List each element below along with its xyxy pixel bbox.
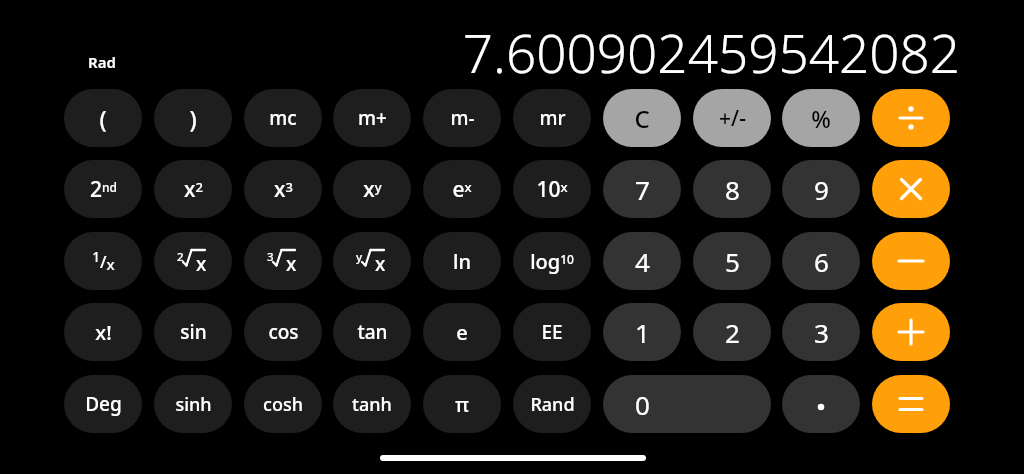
- staticText: Rad: [88, 52, 116, 72]
- button[interactable]: mr: [513, 89, 591, 147]
- staticText: C: [634, 102, 650, 135]
- button[interactable]: x2: [154, 160, 232, 218]
- staticText: m-: [450, 105, 475, 131]
- staticText: 7: [635, 172, 650, 207]
- button[interactable]: mc: [244, 89, 322, 147]
- button[interactable]: EE: [513, 303, 591, 361]
- button[interactable]: 2nd: [64, 160, 142, 218]
- button[interactable]: m-: [423, 89, 501, 147]
- button[interactable]: tanh: [333, 375, 411, 433]
- staticText: 2: [177, 249, 184, 265]
- button[interactable]: %: [782, 89, 860, 147]
- staticText: x2: [184, 175, 203, 204]
- staticText: cosh: [263, 392, 303, 417]
- button[interactable]: ex: [423, 160, 501, 218]
- staticText: 4: [635, 244, 650, 279]
- staticText: xy: [363, 175, 382, 204]
- staticText: %: [811, 103, 831, 134]
- button[interactable]: Rand: [513, 375, 591, 433]
- staticText: x: [375, 251, 386, 277]
- staticText: mr: [539, 105, 566, 131]
- button[interactable]: ): [154, 89, 232, 147]
- button[interactable]: cos: [244, 303, 322, 361]
- button[interactable]: log10: [513, 232, 591, 290]
- staticText: ): [189, 103, 197, 134]
- button[interactable]: Plus: [872, 303, 950, 361]
- button[interactable]: e: [423, 303, 501, 361]
- button[interactable]: 1/x: [64, 232, 142, 290]
- staticText: ln: [453, 248, 471, 275]
- staticText: x3: [274, 175, 293, 204]
- button[interactable]: 6: [782, 232, 860, 290]
- staticText: 5: [725, 244, 740, 279]
- staticText: π: [455, 391, 469, 418]
- button[interactable]: 1: [603, 303, 681, 361]
- button[interactable]: (: [64, 89, 142, 147]
- staticText: 1: [635, 315, 650, 350]
- button[interactable]: 3: [782, 303, 860, 361]
- button[interactable]: Y-th root: [333, 232, 411, 290]
- button[interactable]: tan: [333, 303, 411, 361]
- staticText: Rand: [530, 392, 575, 417]
- button[interactable]: 8: [693, 160, 771, 218]
- button[interactable]: 5: [693, 232, 771, 290]
- staticText: x: [196, 251, 207, 277]
- staticText: 9: [814, 172, 829, 207]
- button[interactable]: ln: [423, 232, 501, 290]
- button[interactable]: x!: [64, 303, 142, 361]
- staticText: 1/x: [92, 248, 115, 274]
- button[interactable]: +/-: [693, 89, 771, 147]
- staticText: log10: [530, 248, 574, 275]
- button[interactable]: π: [423, 375, 501, 433]
- staticText: 3: [814, 315, 829, 350]
- staticText: 8: [725, 172, 740, 207]
- button[interactable]: Divide: [872, 89, 950, 147]
- staticText: x!: [95, 319, 112, 346]
- staticText: 7.600902459542082: [462, 16, 960, 78]
- staticText: y: [356, 249, 363, 265]
- button[interactable]: Cube root: [244, 232, 322, 290]
- staticText: Deg: [85, 391, 122, 417]
- button[interactable]: 2: [693, 303, 771, 361]
- button[interactable]: 9: [782, 160, 860, 218]
- button[interactable]: Decimal point: [782, 375, 860, 433]
- staticText: ex: [452, 175, 472, 204]
- staticText: sinh: [175, 392, 212, 417]
- button[interactable]: 0: [603, 375, 771, 433]
- staticText: 10x: [536, 175, 568, 204]
- staticText: 0: [635, 387, 650, 422]
- staticText: +/-: [719, 104, 746, 133]
- staticText: (: [99, 103, 107, 134]
- staticText: tan: [357, 319, 388, 345]
- button[interactable]: Deg: [64, 375, 142, 433]
- button[interactable]: m+: [333, 89, 411, 147]
- button[interactable]: 10x: [513, 160, 591, 218]
- staticText: cos: [268, 319, 299, 345]
- button[interactable]: x3: [244, 160, 322, 218]
- staticText: x: [286, 251, 297, 277]
- button[interactable]: cosh: [244, 375, 322, 433]
- staticText: 3: [267, 249, 274, 265]
- button[interactable]: 4: [603, 232, 681, 290]
- staticText: EE: [541, 319, 563, 345]
- button[interactable]: Rad: [84, 50, 120, 74]
- button[interactable]: sinh: [154, 375, 232, 433]
- staticText: 2: [725, 315, 740, 350]
- button[interactable]: Multiply: [872, 160, 950, 218]
- staticText: m+: [358, 105, 387, 131]
- staticText: 6: [814, 244, 829, 279]
- button[interactable]: Square root: [154, 232, 232, 290]
- staticText: 2nd: [90, 175, 117, 204]
- button[interactable]: Equals: [872, 375, 950, 433]
- button[interactable]: sin: [154, 303, 232, 361]
- staticText: sin: [180, 319, 207, 345]
- staticText: e: [456, 319, 468, 346]
- button[interactable]: C: [603, 89, 681, 147]
- staticText: mc: [269, 105, 297, 131]
- button[interactable]: 7: [603, 160, 681, 218]
- button[interactable]: Minus: [872, 232, 950, 290]
- button[interactable]: xy: [333, 160, 411, 218]
- staticText: tanh: [352, 392, 392, 417]
